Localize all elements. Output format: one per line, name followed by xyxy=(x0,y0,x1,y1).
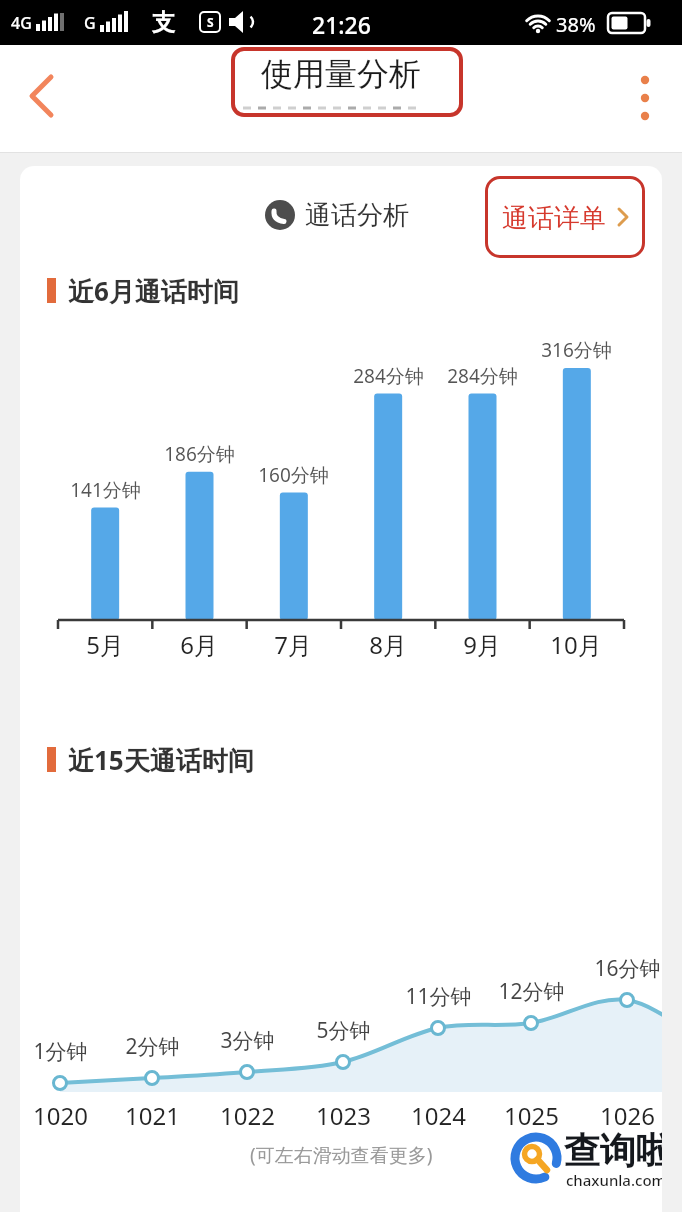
staticText: 9月 xyxy=(463,628,501,661)
staticText: 1021 xyxy=(125,1099,180,1132)
staticText: 5分钟 xyxy=(316,1016,371,1045)
staticText: 1022 xyxy=(220,1099,275,1132)
staticText: 使用量分析 xyxy=(261,54,421,94)
staticText: 12分钟 xyxy=(498,977,565,1006)
button[interactable] xyxy=(624,70,668,134)
staticText: S xyxy=(207,14,214,30)
staticText: 1024 xyxy=(411,1099,466,1132)
staticText: 支 xyxy=(152,8,175,37)
staticText: 4G xyxy=(11,12,32,34)
staticText: 16分钟 xyxy=(594,954,661,983)
staticText: 通话详单 xyxy=(502,202,606,235)
staticText: 21:26 xyxy=(312,9,371,40)
staticText: 316分钟 xyxy=(541,337,612,363)
staticText: 近15天通话时间 xyxy=(68,742,254,778)
button[interactable]: 通话详单 xyxy=(485,176,645,258)
staticText: 1023 xyxy=(316,1099,371,1132)
staticText: 10月 xyxy=(550,628,602,661)
staticText: 查询啦 xyxy=(564,1128,662,1173)
staticText: 38% xyxy=(556,11,596,38)
button[interactable] xyxy=(8,59,68,129)
staticText: 141分钟 xyxy=(70,477,141,503)
staticText: 186分钟 xyxy=(164,441,235,467)
staticText: 1分钟 xyxy=(33,1037,88,1066)
staticText: 2分钟 xyxy=(125,1032,180,1061)
staticText: 1026 xyxy=(600,1099,655,1132)
staticText: 1020 xyxy=(33,1099,88,1132)
staticText: 3分钟 xyxy=(220,1026,275,1055)
staticText: 8月 xyxy=(369,628,407,661)
staticText: 11分钟 xyxy=(405,982,472,1011)
staticText: 160分钟 xyxy=(258,462,329,488)
staticText: 近6月通话时间 xyxy=(68,273,239,309)
staticText: G xyxy=(84,12,96,34)
staticText: 1025 xyxy=(504,1099,559,1132)
staticText: 284分钟 xyxy=(353,363,424,389)
staticText: 通话分析 xyxy=(305,199,409,232)
staticText: 284分钟 xyxy=(447,363,518,389)
staticText: chaxunla.com xyxy=(566,1170,662,1190)
staticText: (可左右滑动查看更多) xyxy=(250,1142,433,1168)
staticText: 6月 xyxy=(180,628,218,661)
staticText: 7月 xyxy=(274,628,312,661)
staticText: 5月 xyxy=(86,628,124,661)
